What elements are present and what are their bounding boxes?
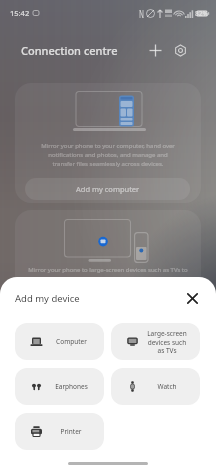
staticText: Add my device [15, 292, 80, 305]
staticText: Mirror your phone to your computer, hand… [23, 142, 193, 168]
button[interactable]: Printer [15, 413, 104, 450]
staticText: Large-screen devices such as TVs [147, 329, 187, 354]
button[interactable]: Computer [15, 323, 104, 360]
staticText: Earphones [55, 382, 88, 391]
staticText: Mirror your phone to large-screen device… [23, 266, 193, 292]
staticText: Computer [56, 337, 87, 346]
button[interactable]: Settings [168, 38, 193, 63]
staticText: 15:42 [10, 8, 30, 18]
staticText: Printer [60, 427, 82, 436]
button[interactable]: Add my computer [25, 178, 190, 200]
button[interactable]: Add [143, 38, 168, 63]
staticText: Watch [157, 382, 177, 391]
staticText: Connection centre [21, 43, 118, 58]
button[interactable]: Watch [111, 368, 200, 405]
staticText: 82% [195, 9, 208, 18]
button[interactable]: Close [179, 285, 205, 311]
button[interactable]: Large-screen devices such as TVs [111, 323, 200, 360]
button[interactable]: Earphones [15, 368, 104, 405]
staticText: Add my computer [76, 184, 140, 194]
